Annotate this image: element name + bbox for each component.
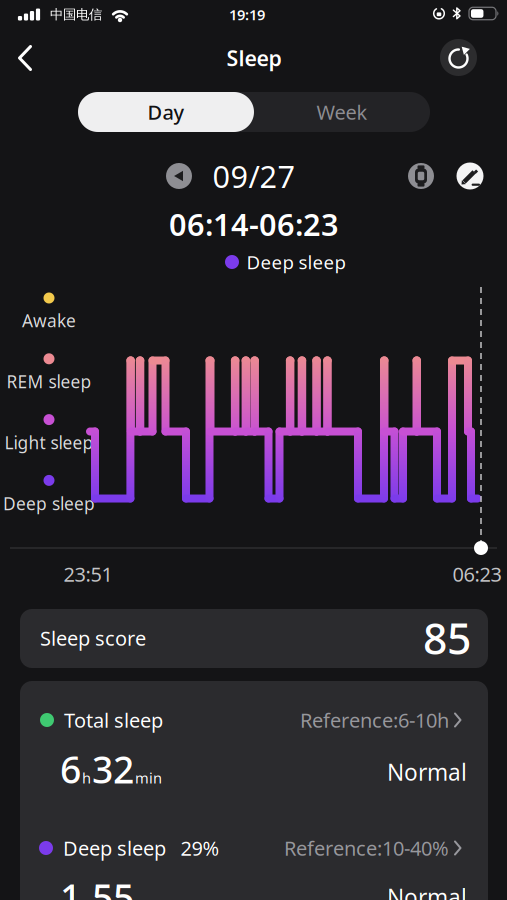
staticText: Sleep score <box>40 625 146 651</box>
staticText: 09/27 <box>212 156 295 196</box>
button[interactable] <box>166 163 192 189</box>
staticText: Deep sleep <box>63 835 166 861</box>
staticText: 32 <box>92 744 134 794</box>
staticText: 85 <box>423 610 471 666</box>
staticText: 19:19 <box>229 5 265 24</box>
staticText: Reference:6-10h <box>300 707 449 733</box>
button[interactable]: Week <box>254 92 430 132</box>
staticText: Total sleep <box>64 707 163 733</box>
staticText: Reference:10-40% <box>284 835 449 861</box>
button[interactable] <box>436 35 480 79</box>
staticText: 55 <box>92 872 134 900</box>
staticText: Normal <box>387 757 467 787</box>
staticText: 1 <box>60 872 81 900</box>
button[interactable] <box>456 162 483 189</box>
staticText: h <box>82 768 91 788</box>
staticText: 中国电信 <box>50 6 102 23</box>
button[interactable] <box>408 163 434 189</box>
staticText: Deep sleep <box>246 250 345 274</box>
button[interactable]: Day <box>78 92 254 132</box>
staticText: 06:23 <box>452 561 501 587</box>
staticText: Day <box>147 99 184 125</box>
button[interactable]: Reference:10-40% <box>284 835 462 861</box>
staticText: Deep sleep <box>3 492 95 515</box>
staticText: Normal <box>387 882 467 900</box>
staticText: 29% <box>180 835 219 861</box>
staticText: Awake <box>22 309 76 332</box>
staticText: Week <box>316 99 367 125</box>
staticText: 23:51 <box>63 561 112 587</box>
staticText: REM sleep <box>6 370 91 393</box>
staticText: 6 <box>60 744 81 794</box>
button[interactable] <box>3 36 47 80</box>
button[interactable]: Reference:6-10h <box>300 707 462 733</box>
staticText: min <box>135 768 162 788</box>
staticText: Sleep <box>226 44 281 72</box>
staticText: 06:14-06:23 <box>169 204 339 244</box>
staticText: Light sleep <box>4 431 93 454</box>
